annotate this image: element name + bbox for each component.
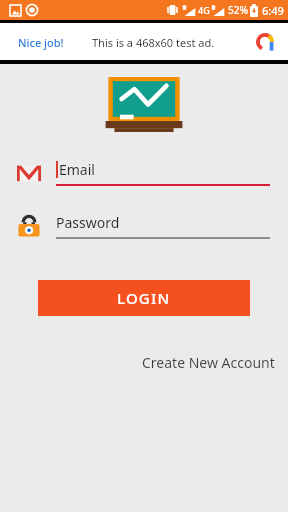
staticText: 4G (198, 4, 210, 16)
staticText: Create New Account (142, 353, 275, 372)
button[interactable]: AdChoices (256, 33, 274, 51)
staticText: Password (56, 213, 120, 232)
button[interactable]: Nice job! (0, 20, 288, 64)
staticText: 52% (228, 3, 248, 17)
staticText: 6:49 (262, 3, 284, 18)
button[interactable]: Password (16, 213, 270, 239)
button[interactable]: Create New Account (142, 353, 275, 372)
staticText: Email (59, 160, 95, 179)
staticText: This is a 468x60 test ad. (92, 35, 215, 50)
staticText: Nice job! (18, 35, 64, 50)
staticText: LOGIN (117, 288, 171, 308)
button[interactable]: LOGIN (38, 280, 250, 316)
button[interactable]: Email (16, 160, 270, 186)
